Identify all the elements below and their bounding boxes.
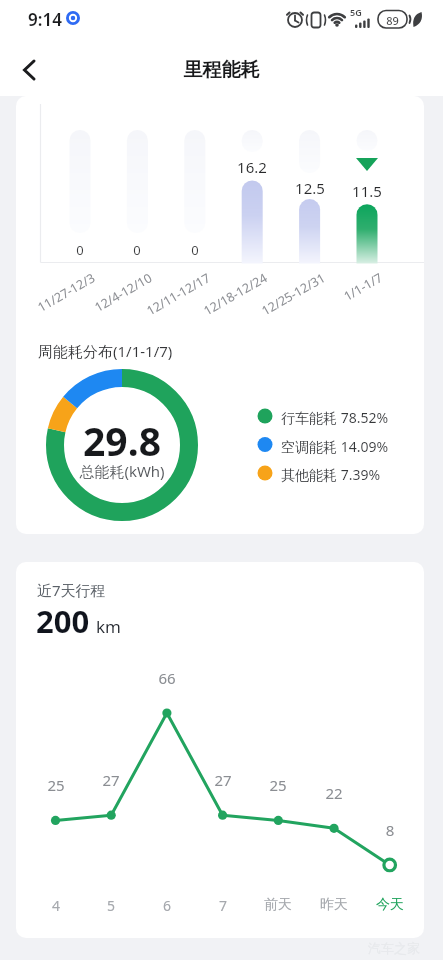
staticText: 周能耗分布(1/1-1/7) (38, 341, 258, 361)
staticText: 12/4-12/10 (92, 269, 155, 315)
staticText: 25 (258, 775, 298, 795)
staticText: 9:14 (28, 8, 72, 31)
staticText: 12/18-12/24 (200, 269, 270, 318)
staticText: 12/25-12/31 (258, 269, 328, 318)
staticText: 1/1-1/7 (341, 269, 385, 304)
staticText: 8 (370, 820, 410, 840)
staticText: 29.8 (52, 414, 192, 467)
staticText: 昨天 (309, 896, 359, 914)
staticText: 4 (31, 896, 81, 915)
staticText: 89 (378, 13, 407, 28)
staticText: 27 (91, 770, 131, 790)
staticText: 0 (117, 241, 157, 259)
staticText: 25 (36, 775, 76, 795)
staticText: 里程能耗 (0, 58, 443, 82)
staticText: 前天 (253, 896, 303, 914)
staticText: 27 (203, 770, 243, 790)
staticText: 12/11-12/17 (143, 269, 213, 318)
staticText: 5 (86, 896, 136, 915)
button[interactable] (12, 52, 48, 88)
staticText: 16.2 (227, 157, 277, 177)
staticText: 其他能耗 7.39% (281, 465, 421, 484)
staticText: 22 (314, 783, 354, 803)
staticText: 66 (147, 668, 187, 688)
staticText: 5G (350, 6, 366, 18)
staticText: 汽车之家 (368, 940, 440, 956)
staticText: 6 (142, 896, 192, 915)
staticText: 总能耗(kWh) (52, 461, 192, 481)
staticText: 0 (175, 241, 215, 259)
staticText: 空调能耗 14.09% (281, 437, 421, 456)
staticText: 11/27-12/3 (35, 269, 98, 315)
staticText: km (96, 615, 121, 638)
staticText: 行车能耗 78.52% (281, 408, 421, 427)
staticText: 0 (60, 241, 100, 259)
staticText: 7 (198, 896, 248, 915)
staticText: 12.5 (285, 178, 335, 198)
staticText: 近7天行程 (37, 580, 187, 600)
staticText: 200 (36, 600, 90, 642)
staticText: 今天 (365, 896, 415, 914)
staticText: 11.5 (342, 181, 392, 201)
